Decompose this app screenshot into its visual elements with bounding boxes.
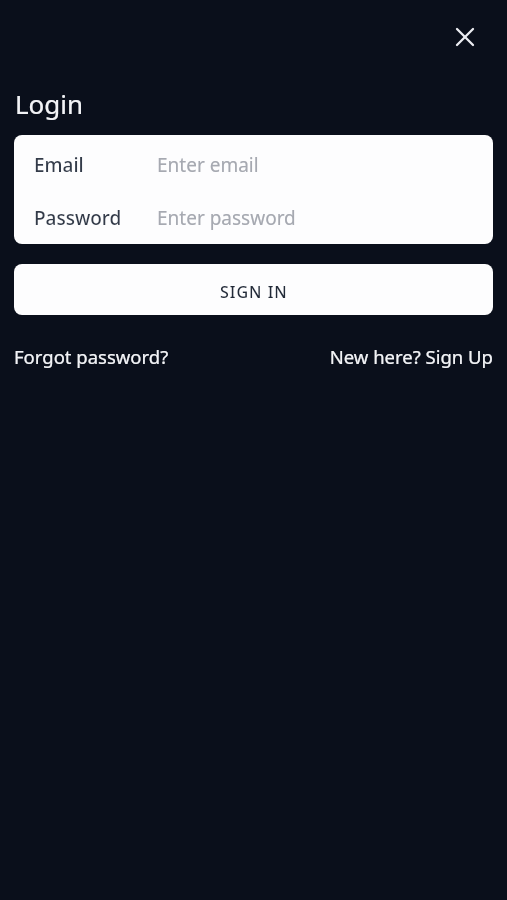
button[interactable]: Password xyxy=(14,192,493,244)
button[interactable]: SIGN IN xyxy=(14,264,493,315)
button[interactable]: Email xyxy=(14,138,493,192)
staticText: Password xyxy=(34,205,122,231)
staticText: Email xyxy=(34,152,84,178)
button[interactable]: Forgot password? xyxy=(14,344,169,369)
button[interactable] xyxy=(443,15,487,59)
staticText: SIGN IN xyxy=(220,281,288,303)
staticText: Enter password xyxy=(157,205,296,231)
button[interactable]: New here? Sign Up xyxy=(0,344,493,369)
staticText: New here? Sign Up xyxy=(329,344,493,369)
staticText: Enter email xyxy=(157,152,259,178)
staticText: Forgot password? xyxy=(14,344,169,369)
staticText: Login xyxy=(15,86,84,121)
